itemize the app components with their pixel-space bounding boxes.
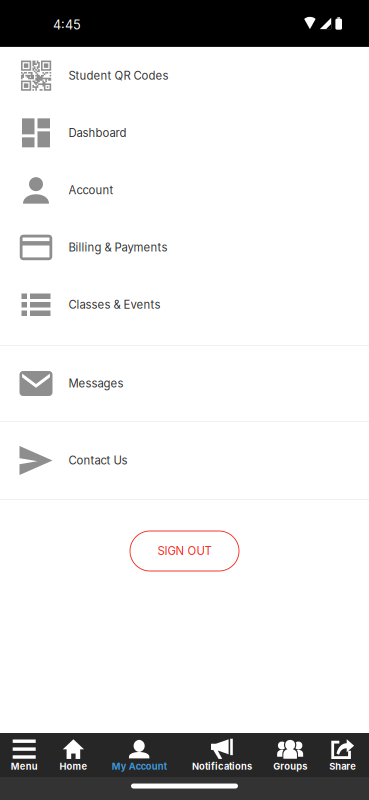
staticText: Account <box>68 183 113 197</box>
staticText: Notifications <box>192 761 252 772</box>
staticText: Menu <box>11 761 38 772</box>
staticText: Billing & Payments <box>68 241 167 254</box>
button[interactable]: Share <box>316 732 369 777</box>
staticText: Classes & Events <box>68 298 160 312</box>
staticText: Contact Us <box>68 454 127 467</box>
button[interactable]: Contact Us <box>0 422 369 499</box>
button[interactable]: Home <box>48 732 98 777</box>
staticText: Student QR Codes <box>68 69 168 82</box>
button[interactable]: SIGN OUT <box>130 531 239 571</box>
staticText: SIGN OUT <box>157 544 211 558</box>
button[interactable]: Account <box>0 161 369 219</box>
button[interactable]: Groups <box>264 732 316 777</box>
button[interactable]: Messages <box>0 346 369 421</box>
button[interactable]: Student QR Codes <box>0 47 369 104</box>
button[interactable]: Menu <box>0 732 48 777</box>
staticText: Home <box>59 761 87 772</box>
button[interactable]: My Account <box>98 732 180 777</box>
button[interactable]: Notifications <box>180 732 264 777</box>
staticText: 4:45 <box>53 17 81 33</box>
staticText: My Account <box>112 761 167 772</box>
button[interactable]: Dashboard <box>0 104 369 161</box>
button[interactable]: Billing & Payments <box>0 219 369 276</box>
button[interactable]: Classes & Events <box>0 276 369 333</box>
staticText: Share <box>329 761 356 772</box>
staticText: Messages <box>68 377 123 390</box>
staticText: Groups <box>273 761 307 772</box>
staticText: Dashboard <box>68 126 126 140</box>
